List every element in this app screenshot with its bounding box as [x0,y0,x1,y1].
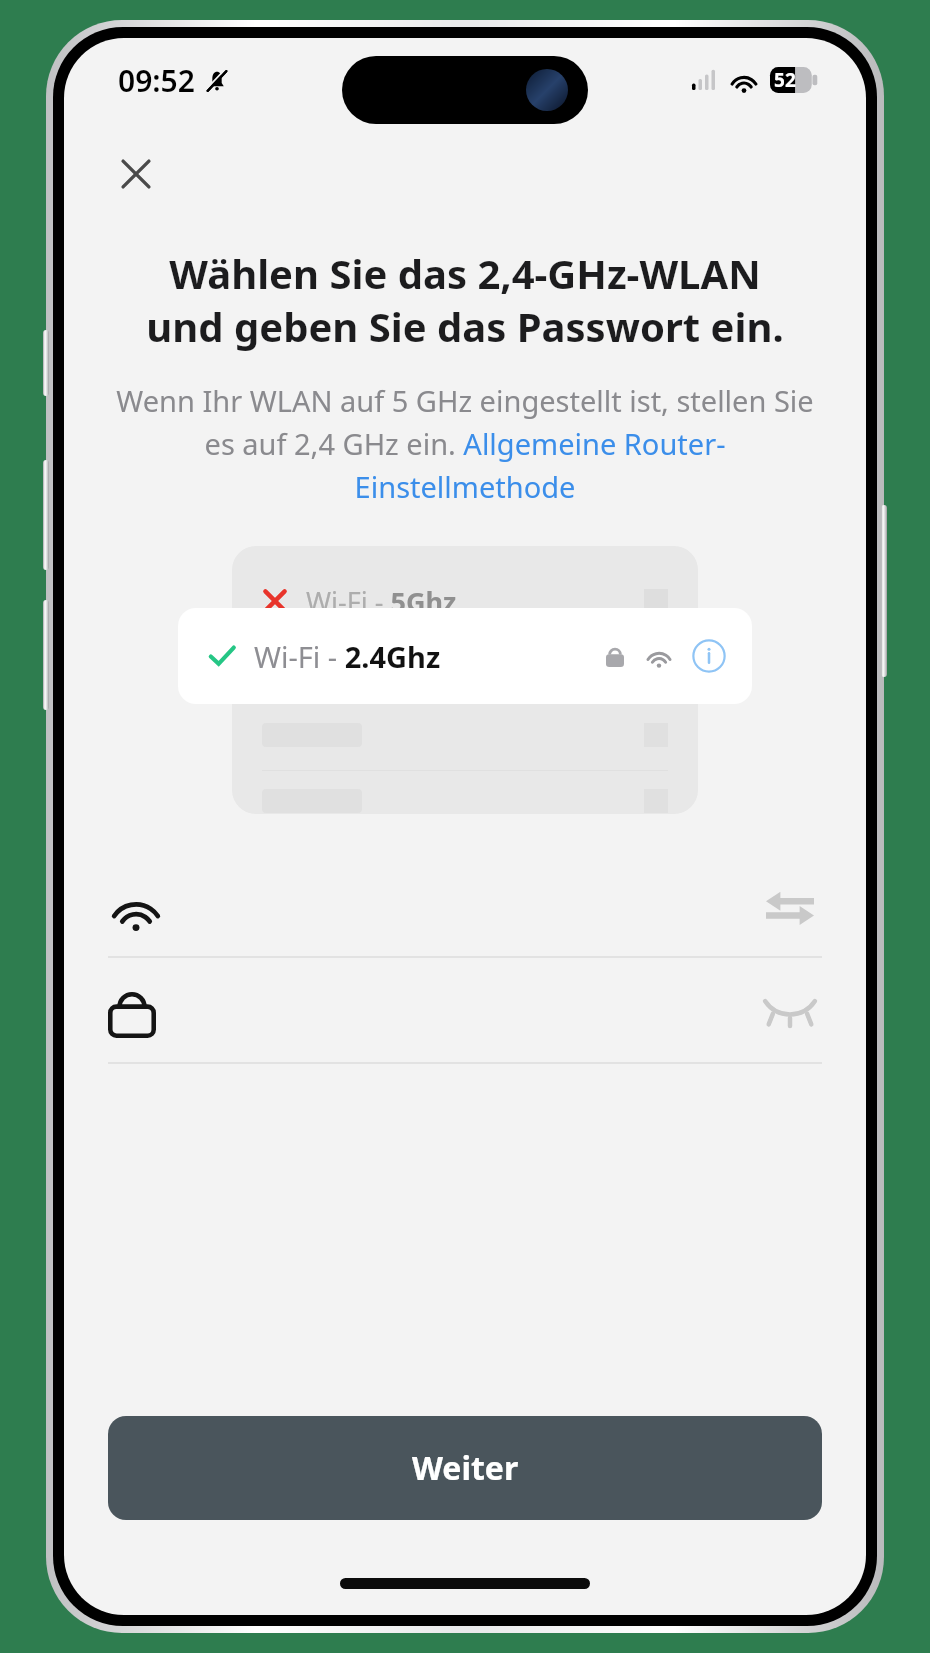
button[interactable]: Weiter [108,1416,822,1520]
staticText: Wählen Sie das 2,4-GHz-WLAN und geben Si… [108,246,822,353]
staticText: 09:52 [118,60,195,101]
staticText: 5 [774,67,785,93]
button[interactable]: Schließen [104,142,168,206]
staticText: Wi-Fi - 5Ghz [306,583,457,620]
button[interactable]: Passwort anzeigen [758,978,822,1042]
staticText: Wi-Fi - 2.4Ghz [254,637,441,676]
button[interactable]: Wenn Ihr WLAN auf 5 GHz eingestellt ist,… [104,381,826,506]
button[interactable]: Netzwerk wechseln [758,876,822,940]
staticText: 2 [785,67,796,93]
button[interactable]: Wi-Fi - 2.4Ghz [178,608,752,704]
other: Info [692,639,726,673]
staticText: Weiter [412,1446,519,1490]
